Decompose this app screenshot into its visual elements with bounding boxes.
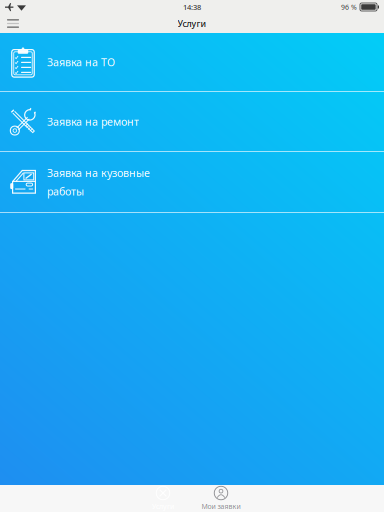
staticText: Заявка на ремонт (47, 114, 139, 129)
staticText: 14:38 (183, 2, 201, 12)
button[interactable]: Заявка на ТО (0, 33, 384, 92)
staticText: Заявка на кузовные работы (47, 165, 150, 199)
button[interactable]: Menu (0, 14, 33, 33)
staticText: Услуги (177, 17, 206, 29)
staticText: 96 % (341, 2, 357, 12)
button[interactable]: Мои заявки (192, 485, 250, 512)
button[interactable]: Заявка на кузовные работы (0, 152, 384, 213)
button[interactable]: Заявка на ремонт (0, 92, 384, 152)
staticText: Мои заявки (201, 501, 240, 511)
staticText: Заявка на ТО (47, 55, 115, 69)
